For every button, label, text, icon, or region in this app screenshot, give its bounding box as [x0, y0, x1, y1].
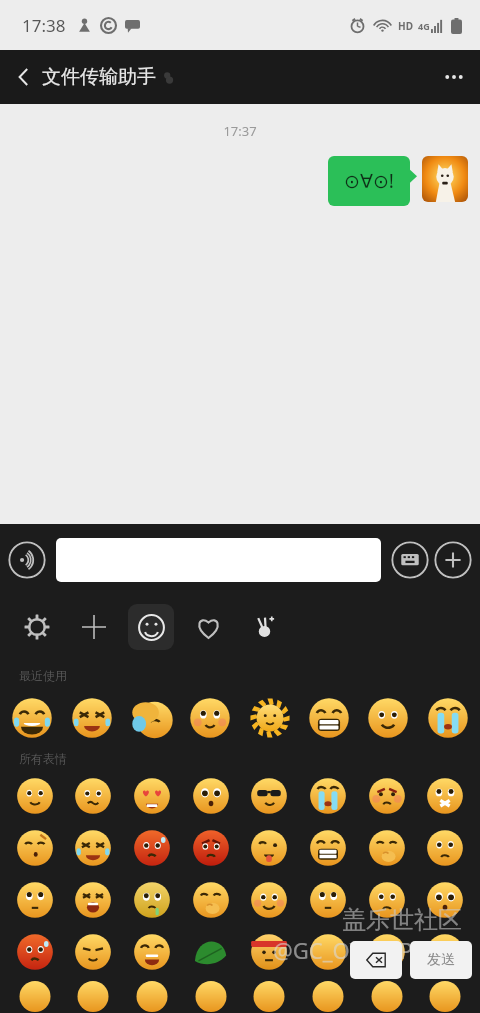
button[interactable]: ⊙∀⊙! — [328, 156, 410, 206]
button[interactable]: Emoji — [128, 928, 176, 976]
button[interactable]: Emoji — [363, 876, 411, 924]
button[interactable]: More options — [428, 51, 480, 103]
button[interactable]: Favorites — [185, 604, 231, 650]
button[interactable]: Emoji — [304, 928, 352, 976]
button[interactable]: Emoji — [187, 824, 235, 872]
button[interactable]: Emoji — [304, 876, 352, 924]
button[interactable]: Emoji — [302, 691, 356, 745]
button[interactable]: Emoji — [187, 772, 235, 820]
staticText: 17:37 — [223, 122, 257, 140]
button[interactable]: Emoji — [245, 928, 293, 976]
button[interactable]: Back — [0, 53, 48, 101]
staticText: 4G — [418, 20, 430, 32]
staticText: 17:38 — [22, 14, 66, 37]
button[interactable]: Emoji — [245, 980, 293, 1013]
button[interactable]: Emoji — [11, 772, 59, 820]
button[interactable] — [56, 538, 381, 582]
staticText: ⊙∀⊙! — [344, 168, 394, 194]
button[interactable]: Emoji settings — [14, 604, 60, 650]
button[interactable]: Add emoji — [71, 604, 117, 650]
button[interactable]: Emoji — [304, 980, 352, 1013]
button[interactable]: Emoji — [421, 980, 469, 1013]
button[interactable]: Emoji — [187, 876, 235, 924]
button[interactable]: More functions — [434, 541, 472, 579]
button[interactable]: Emoji — [11, 928, 59, 976]
button[interactable]: Emoji — [245, 772, 293, 820]
button[interactable]: Emoji — [11, 980, 59, 1013]
button[interactable]: Emoji — [187, 928, 235, 976]
button[interactable]: 发送 — [410, 941, 472, 979]
button[interactable]: Emoji — [361, 691, 415, 745]
button[interactable]: Emoji — [421, 824, 469, 872]
button[interactable]: Emoji — [65, 691, 119, 745]
button[interactable]: Emoji — [245, 876, 293, 924]
button[interactable]: Delete — [350, 941, 402, 979]
button[interactable]: Emoji — [11, 824, 59, 872]
staticText: 最近使用 — [19, 668, 67, 683]
button[interactable]: Emoji — [69, 876, 117, 924]
button[interactable]: Emoji — [69, 824, 117, 872]
button[interactable] — [422, 156, 468, 202]
button[interactable]: Emoji — [421, 691, 475, 745]
button[interactable]: Emoji — [128, 772, 176, 820]
staticText: 发送 — [427, 951, 455, 969]
button[interactable]: Emoji — [69, 928, 117, 976]
button[interactable]: Sticker gallery — [242, 604, 288, 650]
button[interactable]: Keyboard — [391, 541, 429, 579]
button[interactable]: Emoji — [5, 691, 59, 745]
button[interactable]: Emoji — [124, 691, 178, 745]
button[interactable]: Emoji — [187, 980, 235, 1013]
staticText: 所有表情 — [19, 751, 67, 766]
button[interactable]: Emoji — [11, 876, 59, 924]
button[interactable]: Emoji — [245, 824, 293, 872]
button[interactable]: Emoji — [183, 691, 237, 745]
button[interactable]: Emoji — [69, 772, 117, 820]
button[interactable]: Emoji — [69, 980, 117, 1013]
button[interactable]: Emoji — [128, 604, 174, 650]
button[interactable]: Emoji — [128, 980, 176, 1013]
button[interactable]: Emoji — [128, 876, 176, 924]
button[interactable]: Emoji — [304, 824, 352, 872]
button[interactable]: Emoji — [363, 772, 411, 820]
staticText: 盖乐世社区 — [342, 905, 462, 935]
button[interactable]: Emoji — [363, 980, 411, 1013]
button[interactable]: Emoji — [243, 691, 297, 745]
button[interactable]: Emoji — [304, 772, 352, 820]
button[interactable]: Emoji — [363, 824, 411, 872]
staticText: @GC_OW0NPW7M — [273, 935, 466, 965]
button[interactable]: Emoji — [421, 772, 469, 820]
button[interactable]: Emoji — [128, 824, 176, 872]
staticText: 文件传输助手 — [42, 65, 156, 89]
button[interactable]: Emoji — [363, 928, 411, 976]
button[interactable]: Voice message — [8, 541, 46, 579]
button[interactable]: Emoji — [421, 876, 469, 924]
button[interactable]: Emoji — [421, 928, 469, 976]
staticText: HD — [398, 19, 413, 33]
